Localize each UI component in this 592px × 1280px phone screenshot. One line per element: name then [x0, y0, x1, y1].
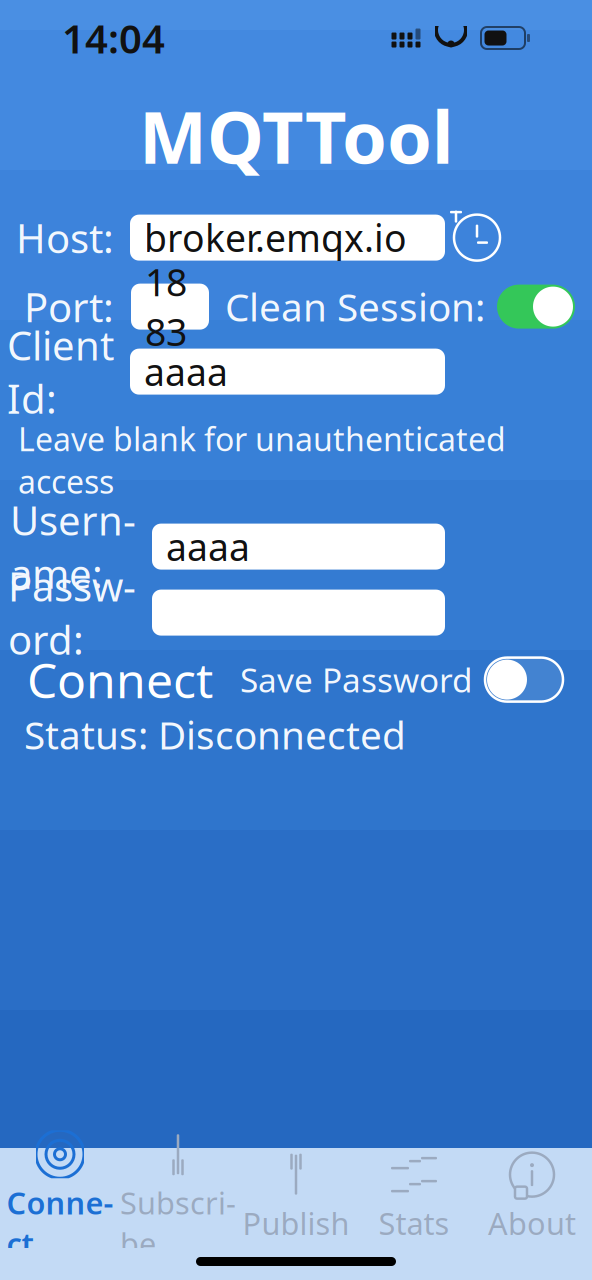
- button[interactable]: Save Password: [485, 658, 563, 702]
- staticText: MQTTool: [139, 88, 453, 184]
- staticText: Save Password: [240, 657, 473, 702]
- button[interactable]: Connect: [0, 651, 240, 709]
- staticText: Connect: [27, 648, 213, 711]
- staticText: aaaa: [166, 522, 250, 571]
- button[interactable]: Stats: [355, 1148, 473, 1248]
- staticText: Publish: [242, 1203, 349, 1243]
- staticText: 1883: [145, 257, 187, 356]
- staticText: Connect: [6, 1182, 113, 1264]
- staticText: aaaa: [144, 347, 228, 396]
- button[interactable]: About: [473, 1148, 591, 1248]
- staticText: Status: Disconnected: [24, 709, 406, 760]
- button[interactable]: Clean Session: [497, 285, 575, 329]
- staticText: Password:: [8, 559, 136, 666]
- staticText: Username:: [10, 493, 136, 600]
- staticText: Clean Session:: [225, 281, 485, 332]
- staticText: Stats: [378, 1203, 449, 1243]
- staticText: Port:: [24, 280, 114, 333]
- staticText: broker.emqx.io: [144, 213, 407, 262]
- button[interactable]: Publish: [237, 1148, 355, 1248]
- staticText: About: [488, 1203, 576, 1243]
- staticText: Leave blank for unauthenticated access: [18, 418, 506, 503]
- staticText: Subscribe: [120, 1182, 236, 1264]
- staticText: Client Id:: [7, 318, 114, 425]
- button[interactable]: Host history: [445, 206, 509, 270]
- staticText: 14:04: [62, 11, 165, 64]
- button[interactable]: Subscribe: [119, 1148, 237, 1248]
- staticText: Host:: [16, 211, 114, 264]
- button[interactable]: Connect: [1, 1148, 119, 1248]
